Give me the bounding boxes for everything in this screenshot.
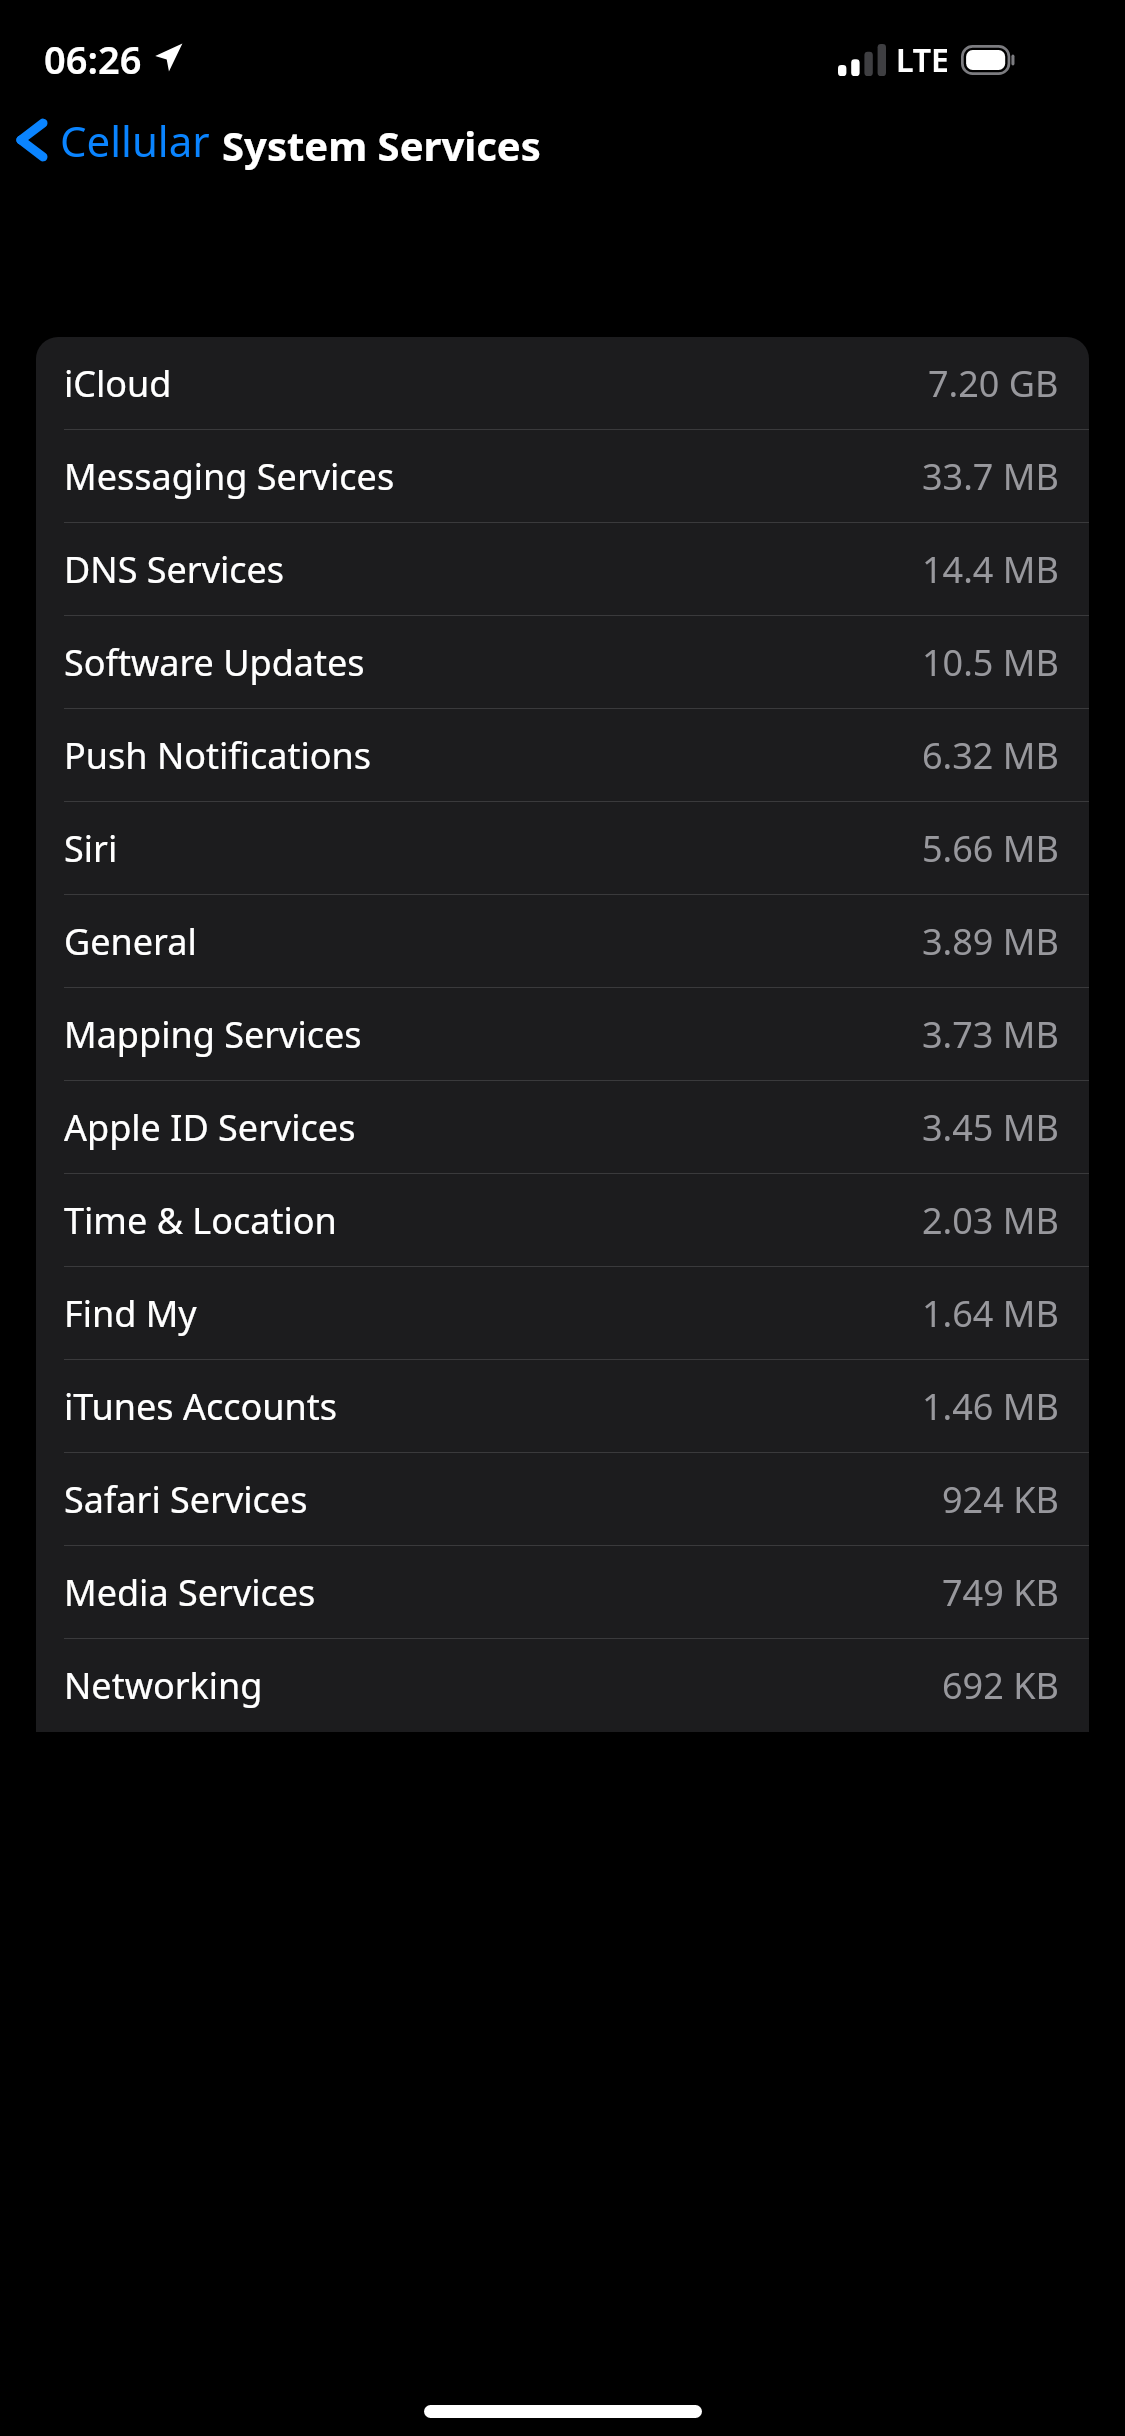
- staticText: 924 KB: [942, 1475, 1059, 1524]
- staticText: Time & Location: [64, 1196, 922, 1245]
- button[interactable]: General: [36, 895, 1089, 987]
- staticText: 5.66 MB: [922, 824, 1059, 873]
- button[interactable]: Siri: [36, 802, 1089, 894]
- staticText: 3.89 MB: [922, 917, 1059, 966]
- staticText: Messaging Services: [64, 452, 922, 501]
- button[interactable]: Software Updates: [36, 616, 1089, 708]
- button[interactable]: Back to Cellular: [0, 104, 226, 176]
- staticText: Networking: [64, 1661, 942, 1710]
- staticText: General: [64, 917, 922, 966]
- other: Back to Cellular: [16, 115, 46, 165]
- staticText: Safari Services: [64, 1475, 942, 1524]
- button[interactable]: Mapping Services: [36, 988, 1089, 1080]
- staticText: 1.46 MB: [922, 1382, 1059, 1431]
- staticText: Siri: [64, 824, 922, 873]
- staticText: iCloud: [64, 359, 928, 408]
- button[interactable]: Networking: [36, 1639, 1089, 1732]
- staticText: 14.4 MB: [922, 545, 1059, 594]
- staticText: 1.64 MB: [922, 1289, 1059, 1338]
- staticText: 10.5 MB: [922, 638, 1059, 687]
- staticText: 7.20 GB: [928, 359, 1059, 408]
- staticText: Software Updates: [64, 638, 922, 687]
- button[interactable]: DNS Services: [36, 523, 1089, 615]
- staticText: Media Services: [64, 1568, 942, 1617]
- staticText: Apple ID Services: [64, 1103, 922, 1152]
- staticText: Push Notifications: [64, 731, 922, 780]
- button[interactable]: Find My: [36, 1267, 1089, 1359]
- staticText: LTE: [896, 38, 949, 82]
- staticText: 749 KB: [942, 1568, 1059, 1617]
- staticText: iTunes Accounts: [64, 1382, 922, 1431]
- staticText: 33.7 MB: [922, 452, 1059, 501]
- staticText: System Services: [222, 118, 541, 172]
- staticText: Mapping Services: [64, 1010, 922, 1059]
- button[interactable]: Media Services: [36, 1546, 1089, 1638]
- staticText: DNS Services: [64, 545, 922, 594]
- staticText: 3.45 MB: [922, 1103, 1059, 1152]
- staticText: 2.03 MB: [922, 1196, 1059, 1245]
- staticText: Cellular: [60, 112, 210, 169]
- button[interactable]: Apple ID Services: [36, 1081, 1089, 1173]
- button[interactable]: Safari Services: [36, 1453, 1089, 1545]
- staticText: 3.73 MB: [922, 1010, 1059, 1059]
- button[interactable]: iTunes Accounts: [36, 1360, 1089, 1452]
- staticText: 692 KB: [942, 1661, 1059, 1710]
- button[interactable]: Time & Location: [36, 1174, 1089, 1266]
- staticText: 6.32 MB: [922, 731, 1059, 780]
- button[interactable]: Push Notifications: [36, 709, 1089, 801]
- button[interactable]: iCloud: [36, 337, 1089, 429]
- button[interactable]: Messaging Services: [36, 430, 1089, 522]
- staticText: Find My: [64, 1289, 922, 1338]
- staticText: 06:26: [44, 33, 142, 85]
